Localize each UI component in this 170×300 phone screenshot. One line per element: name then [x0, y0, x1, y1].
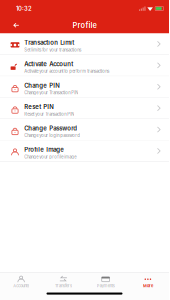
- staticText: Profile: [72, 21, 96, 30]
- staticText: Reset PIN: [24, 103, 54, 110]
- button[interactable]: Transaction Limit: [0, 33, 169, 55]
- staticText: Change PIN: [24, 82, 60, 89]
- staticText: Accounts: [13, 283, 29, 288]
- staticText: Transfers: [55, 283, 72, 288]
- staticText: More: [143, 283, 153, 288]
- staticText: Change Password: [24, 125, 77, 132]
- button[interactable]: Change Password: [0, 119, 169, 140]
- staticText: 10:32: [16, 5, 32, 12]
- button[interactable]: Accounts: [0, 273, 42, 290]
- staticText: Change your login password: [24, 133, 80, 138]
- staticText: Activate your account to perform transac…: [24, 69, 109, 74]
- button[interactable]: Transfers: [42, 273, 85, 290]
- button[interactable]: Profile Image: [0, 140, 169, 162]
- button[interactable]: Reset PIN: [0, 98, 169, 119]
- button[interactable]: Change PIN: [0, 76, 169, 98]
- button[interactable]: Payments: [84, 273, 127, 290]
- button[interactable]: Activate Account: [0, 55, 169, 76]
- staticText: Change your Transaction PIN: [24, 90, 78, 95]
- button[interactable]: Back: [9, 18, 24, 32]
- staticText: Activate Account: [24, 60, 73, 68]
- staticText: Reset your Transaction PIN: [24, 112, 74, 117]
- button[interactable]: More: [127, 273, 169, 290]
- staticText: Set limits for your transactions: [24, 47, 81, 52]
- staticText: Payments: [97, 283, 115, 288]
- staticText: Transaction Limit: [24, 39, 74, 46]
- staticText: Profile Image: [24, 146, 64, 153]
- staticText: Change your profile image: [24, 154, 76, 159]
